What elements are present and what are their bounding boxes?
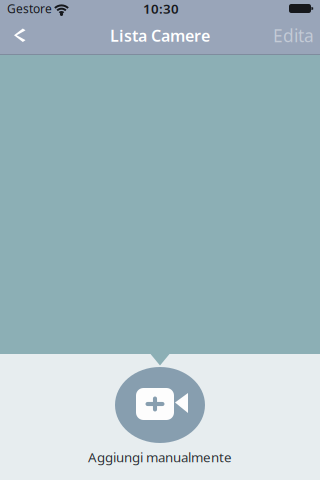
- staticText: Aggiungi manualmente: [88, 448, 232, 466]
- staticText: Edita: [273, 24, 314, 47]
- staticText: 10:30: [143, 0, 179, 17]
- button[interactable]: Aggiungi manualmente: [57, 367, 263, 467]
- button[interactable]: Back: [0, 17, 54, 54]
- staticText: Lista Camere: [110, 25, 210, 46]
- staticText: Gestore: [7, 0, 52, 16]
- button[interactable]: Edita: [260, 17, 320, 54]
